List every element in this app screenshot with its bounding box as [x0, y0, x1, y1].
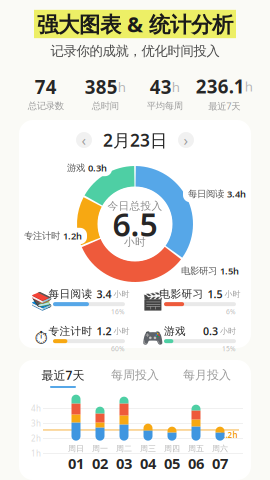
staticText: 📚 [30, 292, 52, 311]
button[interactable]: 🎮 [144, 324, 237, 353]
button[interactable]: 每月投入 [171, 368, 243, 387]
staticText: 1h [31, 448, 41, 459]
staticText: 05 [164, 453, 180, 473]
staticText: h [118, 78, 126, 96]
staticText: 🎬 [141, 292, 163, 311]
staticText: 专注计时 [48, 324, 92, 338]
staticText: 周一 [92, 444, 108, 453]
staticText: 1.2 [96, 324, 111, 338]
staticText: 小时 [124, 235, 146, 248]
staticText: 2.2h [220, 430, 237, 440]
staticText: 周三 [140, 444, 156, 453]
staticText: 01 [68, 453, 84, 473]
staticText: 今日总投入 [107, 199, 162, 212]
staticText: 6% [226, 307, 236, 316]
staticText: 周日 [68, 444, 84, 453]
staticText: 1.5 [207, 287, 222, 301]
button[interactable]: Next day [178, 132, 194, 148]
staticText: 专注计时 [24, 230, 60, 242]
staticText: 最近7天 [41, 367, 84, 383]
staticText: 每日阅读 [48, 287, 92, 301]
staticText: 04 [140, 453, 156, 473]
staticText: 1.5h [220, 265, 239, 277]
staticText: 周五 [188, 444, 204, 453]
staticText: 4h [31, 403, 41, 414]
button[interactable]: ⏱ [33, 324, 126, 353]
staticText: 0.3 [203, 324, 218, 338]
staticText: 3h [31, 418, 41, 429]
staticText: 2月23日 [103, 128, 167, 151]
staticText: h [172, 78, 180, 96]
button[interactable]: 最近7天 [27, 367, 99, 388]
staticText: 游戏 [164, 324, 186, 338]
staticText: 3.4 [96, 287, 111, 301]
staticText: 6.5 [112, 203, 157, 245]
staticText: 0.3h [88, 162, 107, 174]
staticText: 每日阅读 [188, 188, 224, 200]
staticText: 小时 [218, 326, 236, 336]
staticText: h [245, 77, 253, 95]
staticText: 每月投入 [183, 368, 231, 382]
staticText: 🎮 [141, 329, 163, 348]
button[interactable]: 🎬 [144, 287, 237, 316]
staticText: 236.1 [196, 74, 245, 99]
button[interactable]: 每周投入 [99, 368, 171, 387]
button[interactable]: 📚 [33, 287, 126, 316]
staticText: 周六 [212, 444, 228, 453]
staticText: 小时 [111, 289, 129, 299]
staticText: 电影研习 [159, 287, 203, 301]
staticText: 03 [116, 453, 132, 473]
staticText: 电影研习 [181, 265, 217, 277]
staticText: 周四 [164, 444, 180, 453]
staticText: 06 [188, 453, 204, 473]
staticText: 小时 [111, 326, 129, 336]
staticText: ‹ [81, 130, 86, 150]
staticText: 强大图表 & 统计分析 [37, 10, 233, 38]
staticText: 总时间 [92, 100, 119, 112]
staticText: › [183, 130, 188, 150]
staticText: 15% [222, 344, 236, 353]
staticText: 43 [150, 74, 172, 99]
staticText: 最近7天 [208, 100, 240, 112]
staticText: 平均每周 [147, 100, 183, 112]
button[interactable]: Previous day [76, 132, 92, 148]
staticText: 周二 [116, 444, 132, 453]
staticText: ⏱ [34, 330, 48, 347]
staticText: 385 [85, 74, 118, 99]
staticText: 74 [35, 74, 57, 99]
staticText: 记录你的成就，优化时间投入 [50, 43, 219, 59]
staticText: 总记录数 [28, 100, 64, 112]
staticText: 1.2h [63, 230, 82, 242]
staticText: 游戏 [67, 162, 85, 174]
staticText: 每周投入 [111, 368, 159, 382]
staticText: 2h [31, 433, 41, 444]
staticText: 07 [212, 453, 228, 473]
staticText: 16% [111, 307, 125, 316]
staticText: 02 [92, 453, 108, 473]
staticText: 小时 [222, 289, 240, 299]
staticText: 3.4h [227, 188, 246, 200]
staticText: 60% [111, 344, 125, 353]
